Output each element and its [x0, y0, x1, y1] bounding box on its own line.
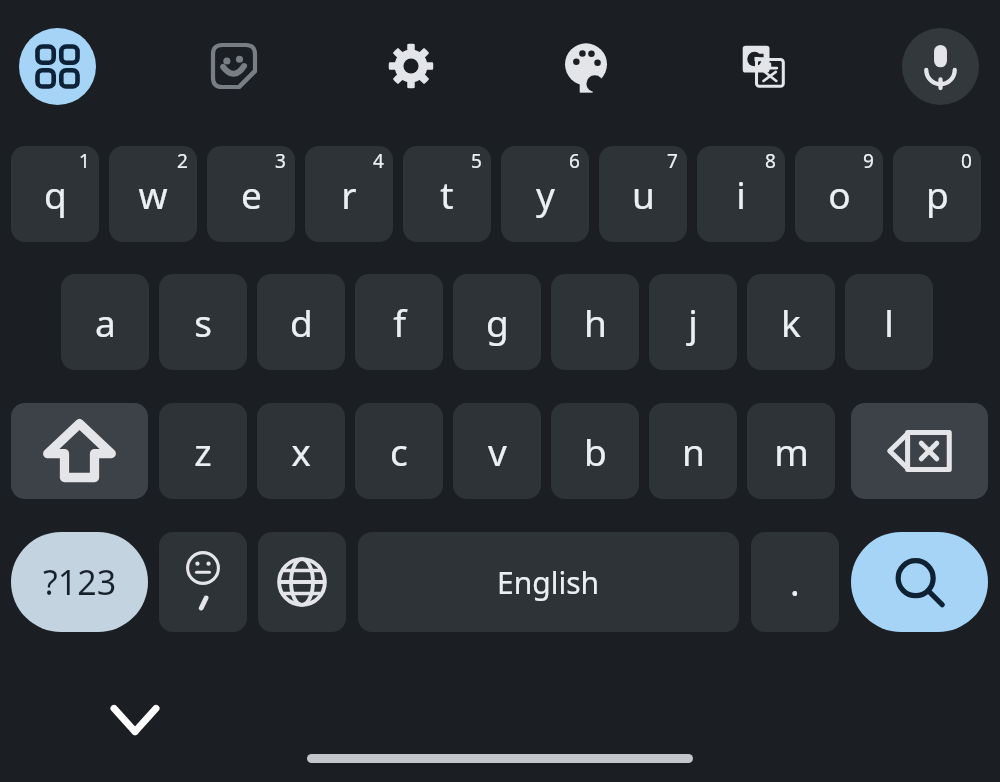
button[interactable]: Stickers	[199, 31, 269, 101]
button[interactable]: Change language	[258, 532, 346, 632]
button[interactable]: o	[795, 146, 883, 242]
button[interactable]: Apps	[19, 28, 96, 105]
staticText: o	[828, 169, 851, 219]
staticText: p	[926, 169, 949, 219]
staticText: l	[884, 297, 894, 347]
button[interactable]: i	[697, 146, 785, 242]
button[interactable]: h	[551, 274, 639, 370]
button[interactable]: v	[453, 403, 541, 499]
staticText: r	[341, 169, 357, 219]
staticText: English	[497, 562, 600, 603]
staticText: 2	[177, 148, 188, 174]
button[interactable]: a	[61, 274, 149, 370]
staticText: 0	[961, 148, 972, 174]
staticText: .	[790, 558, 800, 607]
button[interactable]: Emoji	[159, 532, 247, 632]
staticText: f	[393, 297, 406, 347]
staticText: h	[584, 297, 607, 347]
staticText: w	[138, 169, 168, 219]
staticText: a	[95, 297, 116, 347]
staticText: y	[536, 169, 555, 219]
staticText: c	[390, 426, 408, 476]
button[interactable]: n	[649, 403, 737, 499]
staticText: n	[682, 426, 705, 476]
staticText: 8	[765, 148, 776, 174]
staticText: q	[44, 169, 67, 219]
staticText: 1	[79, 148, 90, 174]
button[interactable]: Search	[851, 532, 988, 632]
staticText: v	[488, 426, 507, 476]
staticText: s	[194, 297, 212, 347]
staticText: 5	[471, 148, 482, 174]
button[interactable]: Voice input	[902, 28, 979, 105]
button[interactable]: Hide keyboard	[100, 685, 170, 755]
staticText: j	[688, 297, 698, 347]
button[interactable]: k	[747, 274, 835, 370]
staticText: ?123	[43, 559, 117, 605]
staticText: 4	[373, 148, 384, 174]
button[interactable]: b	[551, 403, 639, 499]
staticText: e	[241, 169, 262, 219]
button[interactable]: r	[305, 146, 393, 242]
button[interactable]: t	[403, 146, 491, 242]
staticText: g	[486, 297, 509, 347]
button[interactable]: s	[159, 274, 247, 370]
staticText: u	[632, 169, 655, 219]
staticText: k	[781, 297, 801, 347]
button[interactable]: g	[453, 274, 541, 370]
staticText: z	[194, 426, 212, 476]
staticText: m	[774, 426, 809, 476]
button[interactable]: c	[355, 403, 443, 499]
staticText: d	[290, 297, 313, 347]
staticText: x	[291, 426, 311, 476]
button[interactable]: d	[257, 274, 345, 370]
button[interactable]: m	[747, 403, 835, 499]
button[interactable]: u	[599, 146, 687, 242]
button[interactable]: x	[257, 403, 345, 499]
staticText: 7	[667, 148, 678, 174]
staticText: i	[736, 169, 746, 219]
button[interactable]: q	[11, 146, 99, 242]
button[interactable]: English	[358, 532, 739, 632]
button[interactable]: Translate	[728, 31, 798, 101]
button[interactable]: y	[501, 146, 589, 242]
button[interactable]: Theme	[551, 31, 621, 101]
staticText: 3	[275, 148, 286, 174]
button[interactable]: l	[845, 274, 933, 370]
staticText: 9	[863, 148, 874, 174]
button[interactable]: Period	[751, 532, 839, 632]
staticText: t	[440, 169, 454, 219]
button[interactable]: e	[207, 146, 295, 242]
button[interactable]: Backspace	[851, 403, 988, 499]
staticText: b	[584, 426, 607, 476]
button[interactable]: Settings	[376, 31, 446, 101]
button[interactable]: w	[109, 146, 197, 242]
button[interactable]: Shift	[11, 403, 148, 499]
button[interactable]: z	[159, 403, 247, 499]
button[interactable]: p	[893, 146, 981, 242]
button[interactable]: j	[649, 274, 737, 370]
staticText: 6	[569, 148, 580, 174]
button[interactable]: ?123	[11, 532, 148, 632]
button[interactable]: f	[355, 274, 443, 370]
